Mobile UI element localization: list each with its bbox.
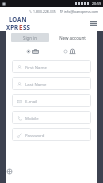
button[interactable]: 1-800-228-335 [29, 9, 56, 14]
staticText: XPR [6, 23, 19, 31]
button[interactable]: Account type [51, 44, 89, 58]
staticText: E-mail [25, 98, 38, 104]
staticText: 20:59 [92, 1, 101, 6]
button[interactable]: Mobile [12, 111, 91, 124]
staticText: E [19, 23, 23, 31]
staticText: First Name [25, 64, 47, 70]
button[interactable]: info@loanxpress.com [60, 9, 99, 14]
button[interactable]: LOAN [6, 15, 30, 31]
button[interactable]: Menu [88, 18, 99, 29]
button[interactable]: First Name [12, 60, 91, 73]
staticText: Last Name [25, 81, 47, 87]
staticText: info@loanxpress.com [64, 9, 99, 14]
button[interactable]: Account type [14, 44, 51, 58]
button[interactable]: Language [7, 169, 12, 174]
staticText: LOAN [9, 15, 27, 23]
button[interactable]: Password [12, 128, 91, 141]
staticText: SS [23, 23, 30, 31]
button[interactable]: E-mail [12, 94, 91, 107]
button[interactable]: Sign in [11, 33, 49, 42]
staticText: Mobile [25, 115, 39, 121]
button[interactable]: New account [53, 33, 92, 42]
staticText: 1-800-228-335 [33, 9, 56, 14]
staticText: New account [59, 35, 86, 41]
staticText: Sign in [23, 35, 37, 41]
staticText: Password [25, 132, 45, 138]
button[interactable]: Last Name [12, 77, 91, 90]
